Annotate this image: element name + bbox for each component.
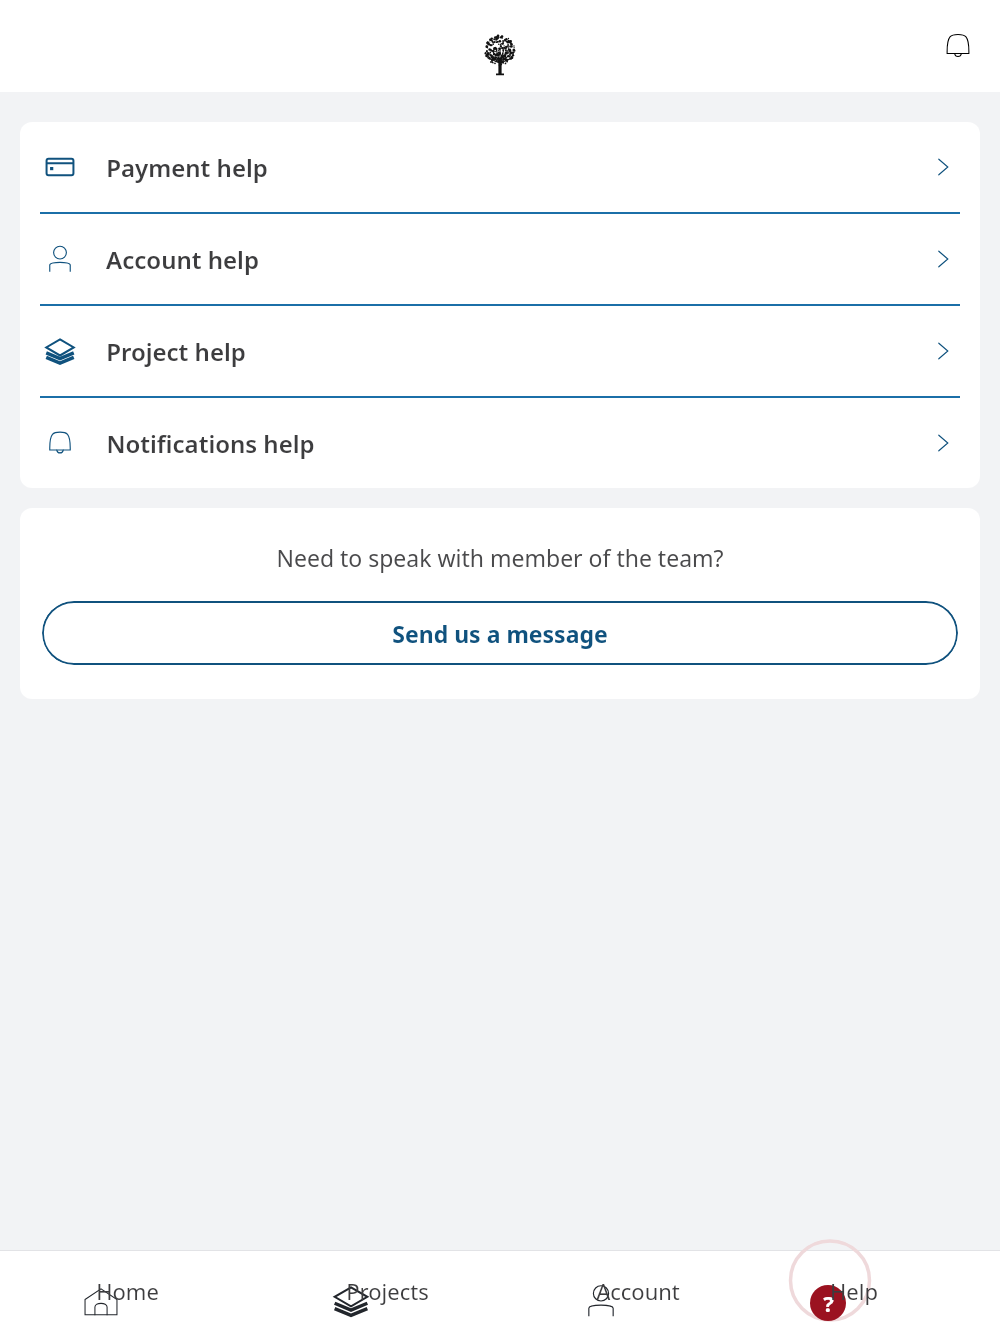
button[interactable]: Account bbox=[500, 1251, 750, 1334]
staticText: Account bbox=[596, 1276, 680, 1306]
button[interactable]: Notifications bbox=[930, 18, 986, 74]
button[interactable]: Send us a message bbox=[42, 601, 958, 665]
staticText: Projects bbox=[346, 1276, 429, 1306]
staticText: Notifications help bbox=[106, 427, 315, 460]
button[interactable]: Payment help bbox=[20, 122, 980, 212]
staticText: Help bbox=[830, 1276, 878, 1306]
button[interactable]: Account help bbox=[20, 214, 980, 304]
button[interactable]: Project help bbox=[20, 306, 980, 396]
staticText: ? bbox=[823, 1288, 834, 1318]
staticText: Payment help bbox=[106, 151, 268, 184]
button[interactable]: Home bbox=[0, 1251, 250, 1334]
staticText: Project help bbox=[106, 335, 246, 368]
staticText: Need to speak with member of the team? bbox=[276, 542, 724, 573]
button[interactable]: Home logo bbox=[472, 27, 528, 83]
button[interactable]: Notifications help bbox=[20, 398, 980, 488]
staticText: Home bbox=[96, 1276, 159, 1306]
button[interactable]: Help bbox=[750, 1251, 1000, 1334]
button[interactable]: Projects bbox=[250, 1251, 500, 1334]
staticText: Send us a message bbox=[392, 618, 608, 649]
staticText: Account help bbox=[106, 243, 259, 276]
